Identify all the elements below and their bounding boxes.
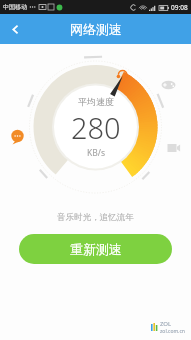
staticText: ZOL [160, 320, 172, 328]
staticText: 09:08 [171, 3, 188, 12]
staticText: 重新测速 [70, 241, 122, 257]
staticText: 280 [71, 108, 121, 147]
staticText: 音乐时光，追忆流年 [0, 212, 191, 223]
staticText: zol.com.cn [160, 328, 185, 335]
button[interactable]: 重新测速 [19, 234, 172, 264]
staticText: 网络测速 [70, 21, 122, 37]
staticText: 平均速度 [78, 96, 114, 107]
staticText: KB/s [87, 147, 106, 159]
staticText: 中国移动 [3, 3, 27, 11]
button[interactable]: Back [0, 14, 30, 44]
